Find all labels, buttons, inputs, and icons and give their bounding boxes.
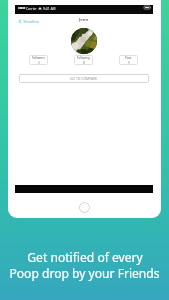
staticText: Poos [125, 56, 132, 60]
button[interactable]: Poos [119, 55, 138, 65]
button[interactable]: Timeline [18, 19, 40, 24]
staticText: Poop drop by your Friends [9, 265, 160, 281]
staticText: Followers [32, 56, 45, 60]
staticText: Timeline [23, 19, 40, 24]
staticText: 3 [38, 61, 40, 65]
button[interactable]: GO TO COMPARE [19, 74, 149, 83]
button[interactable]: Home [79, 202, 90, 213]
staticText: Following [77, 56, 90, 60]
staticText: 8 [83, 61, 85, 65]
button[interactable]: Following [74, 55, 93, 65]
staticText: 9 [128, 61, 130, 65]
button[interactable]: Followers [29, 55, 48, 65]
staticText: Get notified of every [27, 249, 143, 265]
staticText: 9:41 AM [43, 6, 56, 10]
staticText: GO TO COMPARE [70, 76, 98, 81]
staticText: Carrier [26, 6, 37, 10]
staticText: Jenn [79, 17, 89, 23]
